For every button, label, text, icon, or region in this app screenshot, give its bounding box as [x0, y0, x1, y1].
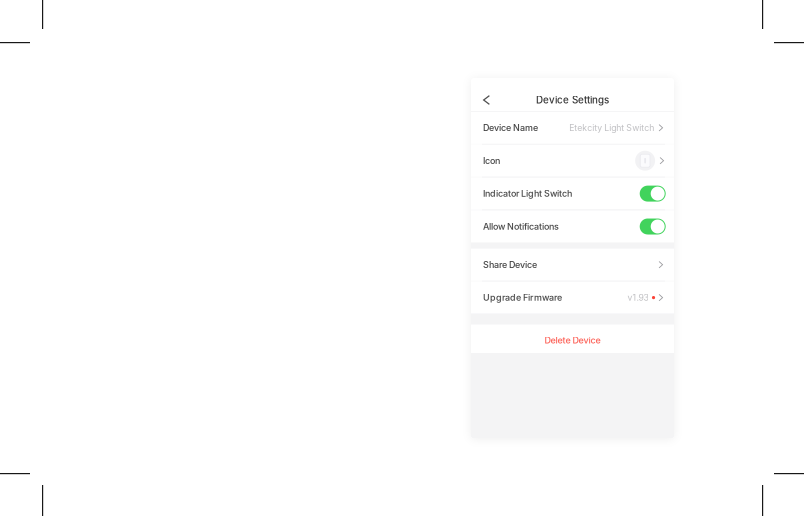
- button[interactable]: Icon: [471, 145, 674, 177]
- staticText: Device Settings: [536, 94, 609, 106]
- button[interactable]: Upgrade Firmware: [471, 281, 674, 314]
- button[interactable]: Indicator Light Switch: [471, 177, 674, 210]
- staticText: Share Device: [483, 259, 537, 270]
- button[interactable]: Delete Device: [471, 324, 674, 353]
- staticText: Upgrade Firmware: [483, 292, 562, 303]
- staticText: Allow Notifications: [483, 221, 559, 232]
- button[interactable]: Share Device: [471, 249, 674, 281]
- staticText: Device Name: [483, 122, 538, 133]
- staticText: Etekcity Light Switch: [569, 123, 654, 133]
- staticText: Delete Device: [544, 335, 600, 346]
- button[interactable]: Device Name: [471, 112, 674, 144]
- button[interactable]: Back: [475, 89, 498, 111]
- button[interactable]: Allow Notifications: [471, 210, 674, 243]
- staticText: v1.93: [627, 292, 648, 303]
- staticText: Indicator Light Switch: [483, 188, 572, 199]
- staticText: Icon: [483, 155, 500, 166]
